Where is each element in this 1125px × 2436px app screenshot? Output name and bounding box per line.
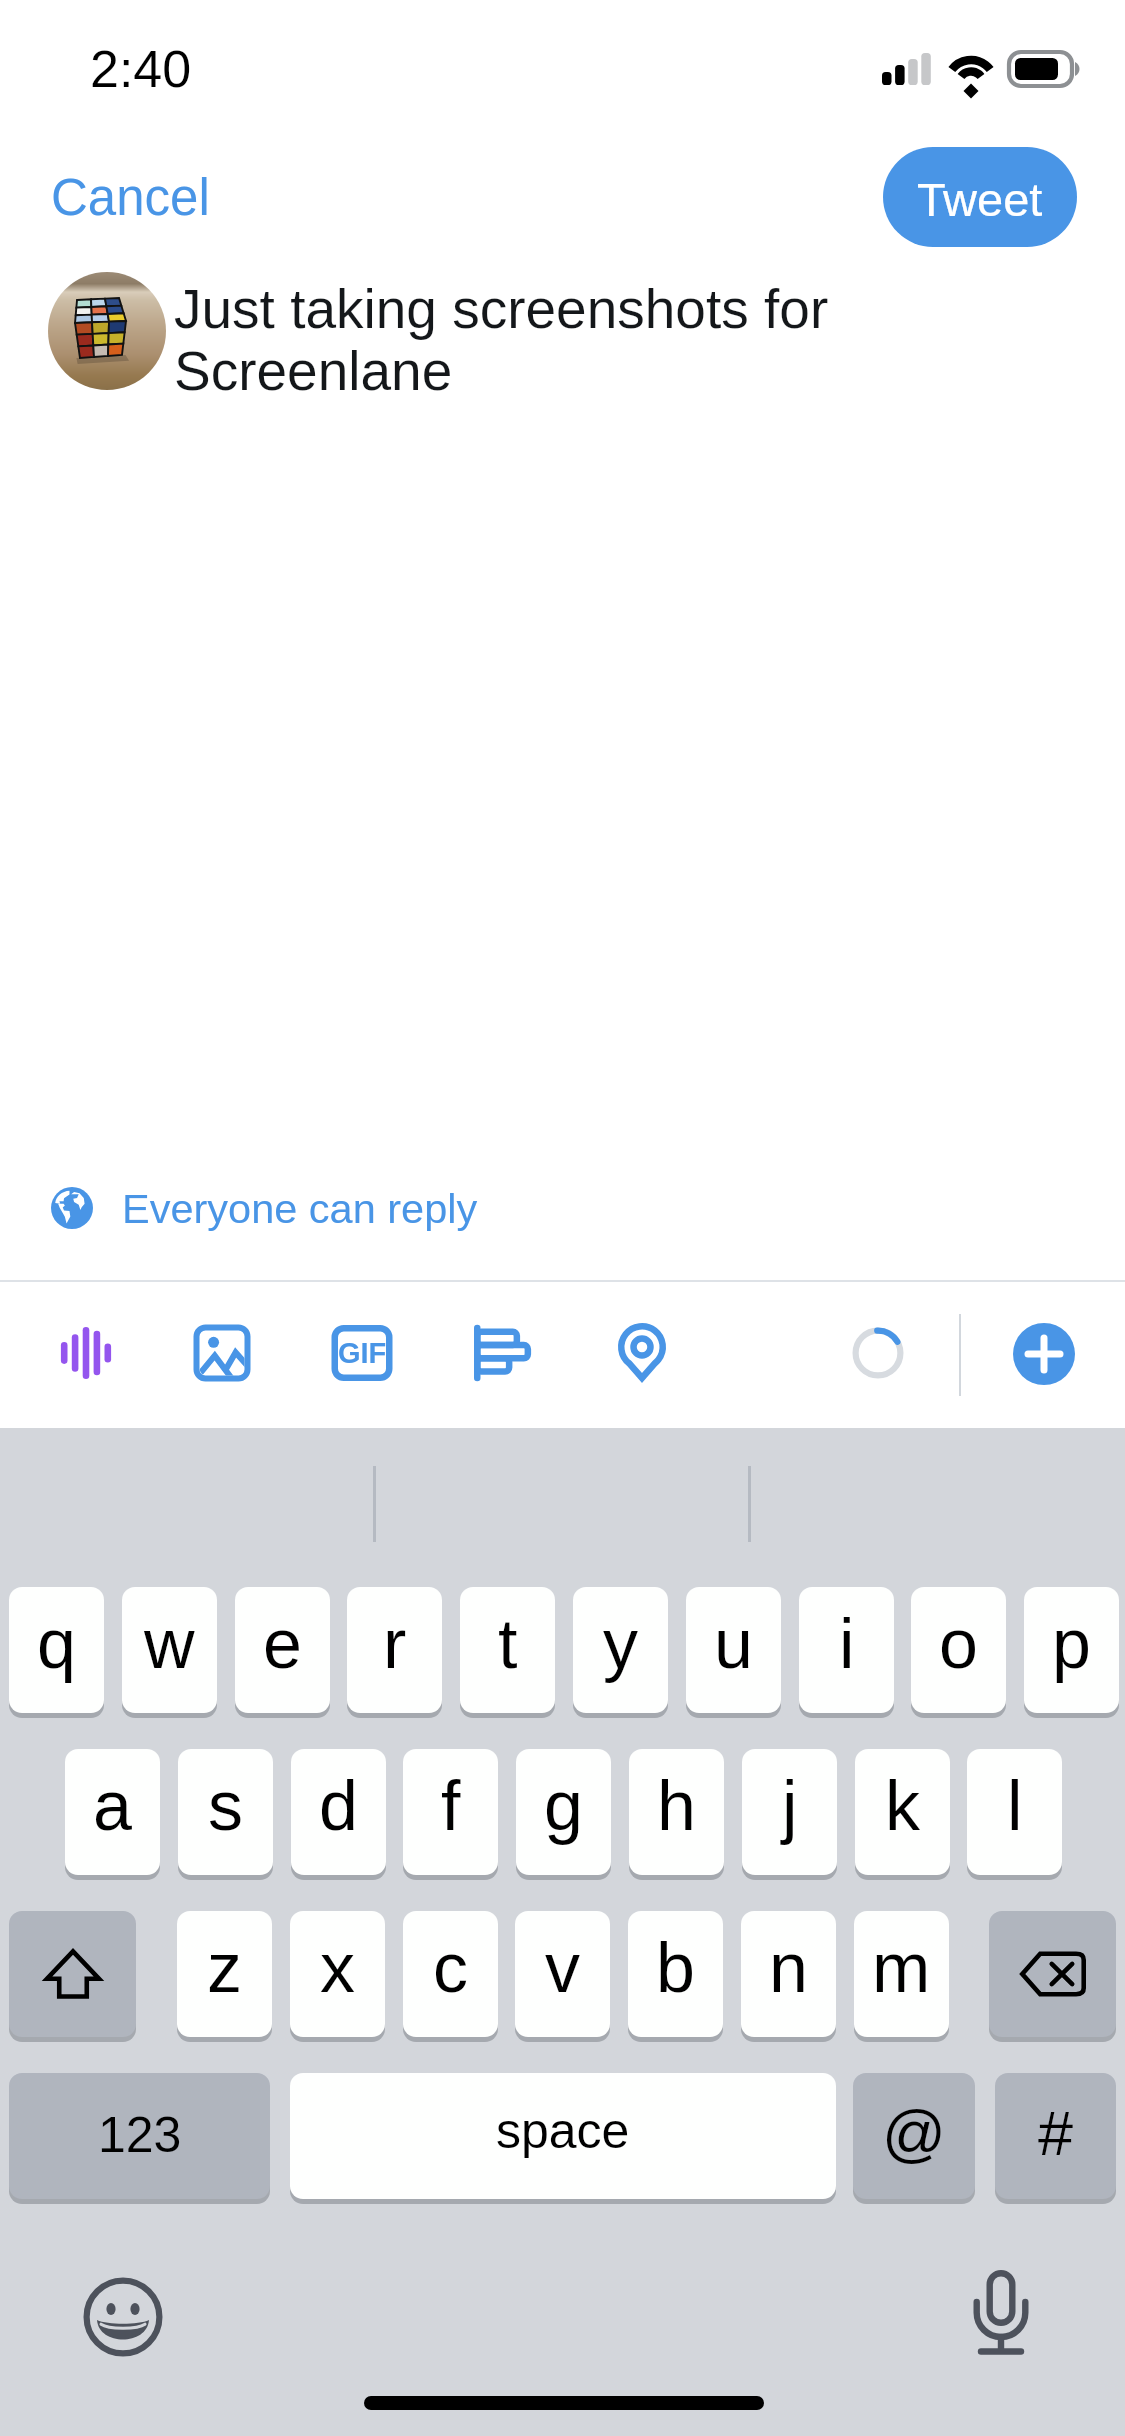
- button[interactable]: Profile photo: [48, 272, 166, 390]
- staticText: h: [657, 1767, 696, 1845]
- button[interactable]: b: [628, 1911, 723, 2037]
- staticText: w: [144, 1605, 195, 1683]
- button[interactable]: l: [967, 1749, 1062, 1875]
- staticText: e: [263, 1605, 302, 1683]
- staticText: y: [603, 1605, 638, 1683]
- button[interactable]: v: [515, 1911, 610, 2037]
- button[interactable]: Tweet: [883, 147, 1077, 247]
- button[interactable]: GIF: [315, 1306, 409, 1400]
- button[interactable]: Cancel: [22, 152, 239, 243]
- button[interactable]: Location: [591, 1302, 693, 1404]
- staticText: o: [939, 1605, 978, 1683]
- button[interactable]: #: [995, 2073, 1116, 2199]
- staticText: p: [1052, 1605, 1091, 1683]
- button[interactable]: Emoji keyboard: [78, 2272, 168, 2362]
- button[interactable]: k: [855, 1749, 950, 1875]
- staticText: l: [1007, 1767, 1023, 1845]
- button[interactable]: y: [573, 1587, 668, 1713]
- button[interactable]: space: [290, 2073, 836, 2199]
- staticText: u: [714, 1605, 753, 1683]
- button[interactable]: n: [741, 1911, 836, 2037]
- button[interactable]: p: [1024, 1587, 1119, 1713]
- button[interactable]: Everyone can reply: [39, 1175, 490, 1241]
- staticText: f: [441, 1767, 461, 1845]
- staticText: Cancel: [51, 169, 210, 226]
- staticText: v: [545, 1929, 580, 2007]
- staticText: Just taking screenshots for Screenlane: [174, 278, 864, 401]
- button[interactable]: i: [799, 1587, 894, 1713]
- button[interactable]: e: [235, 1587, 330, 1713]
- staticText: n: [769, 1929, 808, 2007]
- staticText: @: [882, 2098, 946, 2168]
- staticText: space: [496, 2103, 630, 2159]
- button[interactable]: 123: [9, 2073, 270, 2199]
- button[interactable]: Voice recording: [42, 1309, 130, 1397]
- button[interactable]: Dictation: [953, 2250, 1049, 2375]
- button[interactable]: h: [629, 1749, 724, 1875]
- staticText: b: [656, 1929, 695, 2007]
- button[interactable]: c: [403, 1911, 498, 2037]
- staticText: Everyone can reply: [122, 1185, 478, 1231]
- button[interactable]: Character count: [832, 1307, 924, 1399]
- button[interactable]: @: [853, 2073, 975, 2199]
- button[interactable]: Shift: [9, 1911, 136, 2037]
- button[interactable]: Backspace: [989, 1911, 1116, 2037]
- staticText: j: [782, 1767, 798, 1845]
- staticText: a: [93, 1767, 132, 1845]
- staticText: g: [544, 1767, 583, 1845]
- button[interactable]: f: [403, 1749, 498, 1875]
- staticText: s: [208, 1767, 243, 1845]
- button[interactable]: t: [460, 1587, 555, 1713]
- staticText: Tweet: [917, 173, 1043, 226]
- staticText: c: [433, 1929, 468, 2007]
- button[interactable]: Poll: [451, 1302, 553, 1404]
- staticText: 2:40: [90, 40, 192, 98]
- staticText: q: [37, 1605, 76, 1683]
- staticText: m: [872, 1929, 931, 2007]
- staticText: GIF: [338, 1337, 387, 1369]
- button[interactable]: g: [516, 1749, 611, 1875]
- button[interactable]: u: [686, 1587, 781, 1713]
- button[interactable]: m: [854, 1911, 949, 2037]
- button[interactable]: a: [65, 1749, 160, 1875]
- button[interactable]: r: [347, 1587, 442, 1713]
- staticText: x: [320, 1929, 355, 2007]
- staticText: #: [1038, 2098, 1074, 2168]
- button[interactable]: s: [178, 1749, 273, 1875]
- staticText: i: [839, 1605, 855, 1683]
- staticText: k: [885, 1767, 920, 1845]
- button[interactable]: o: [911, 1587, 1006, 1713]
- button[interactable]: Add photo: [177, 1308, 267, 1398]
- staticText: t: [498, 1605, 518, 1683]
- button[interactable]: d: [291, 1749, 386, 1875]
- button[interactable]: z: [177, 1911, 272, 2037]
- staticText: 123: [98, 2107, 182, 2163]
- button[interactable]: x: [290, 1911, 385, 2037]
- button[interactable]: q: [9, 1587, 104, 1713]
- button[interactable]: Add: [1013, 1323, 1075, 1385]
- button[interactable]: j: [742, 1749, 837, 1875]
- staticText: r: [383, 1605, 407, 1683]
- button[interactable]: w: [122, 1587, 217, 1713]
- staticText: d: [319, 1767, 358, 1845]
- staticText: z: [207, 1929, 242, 2007]
